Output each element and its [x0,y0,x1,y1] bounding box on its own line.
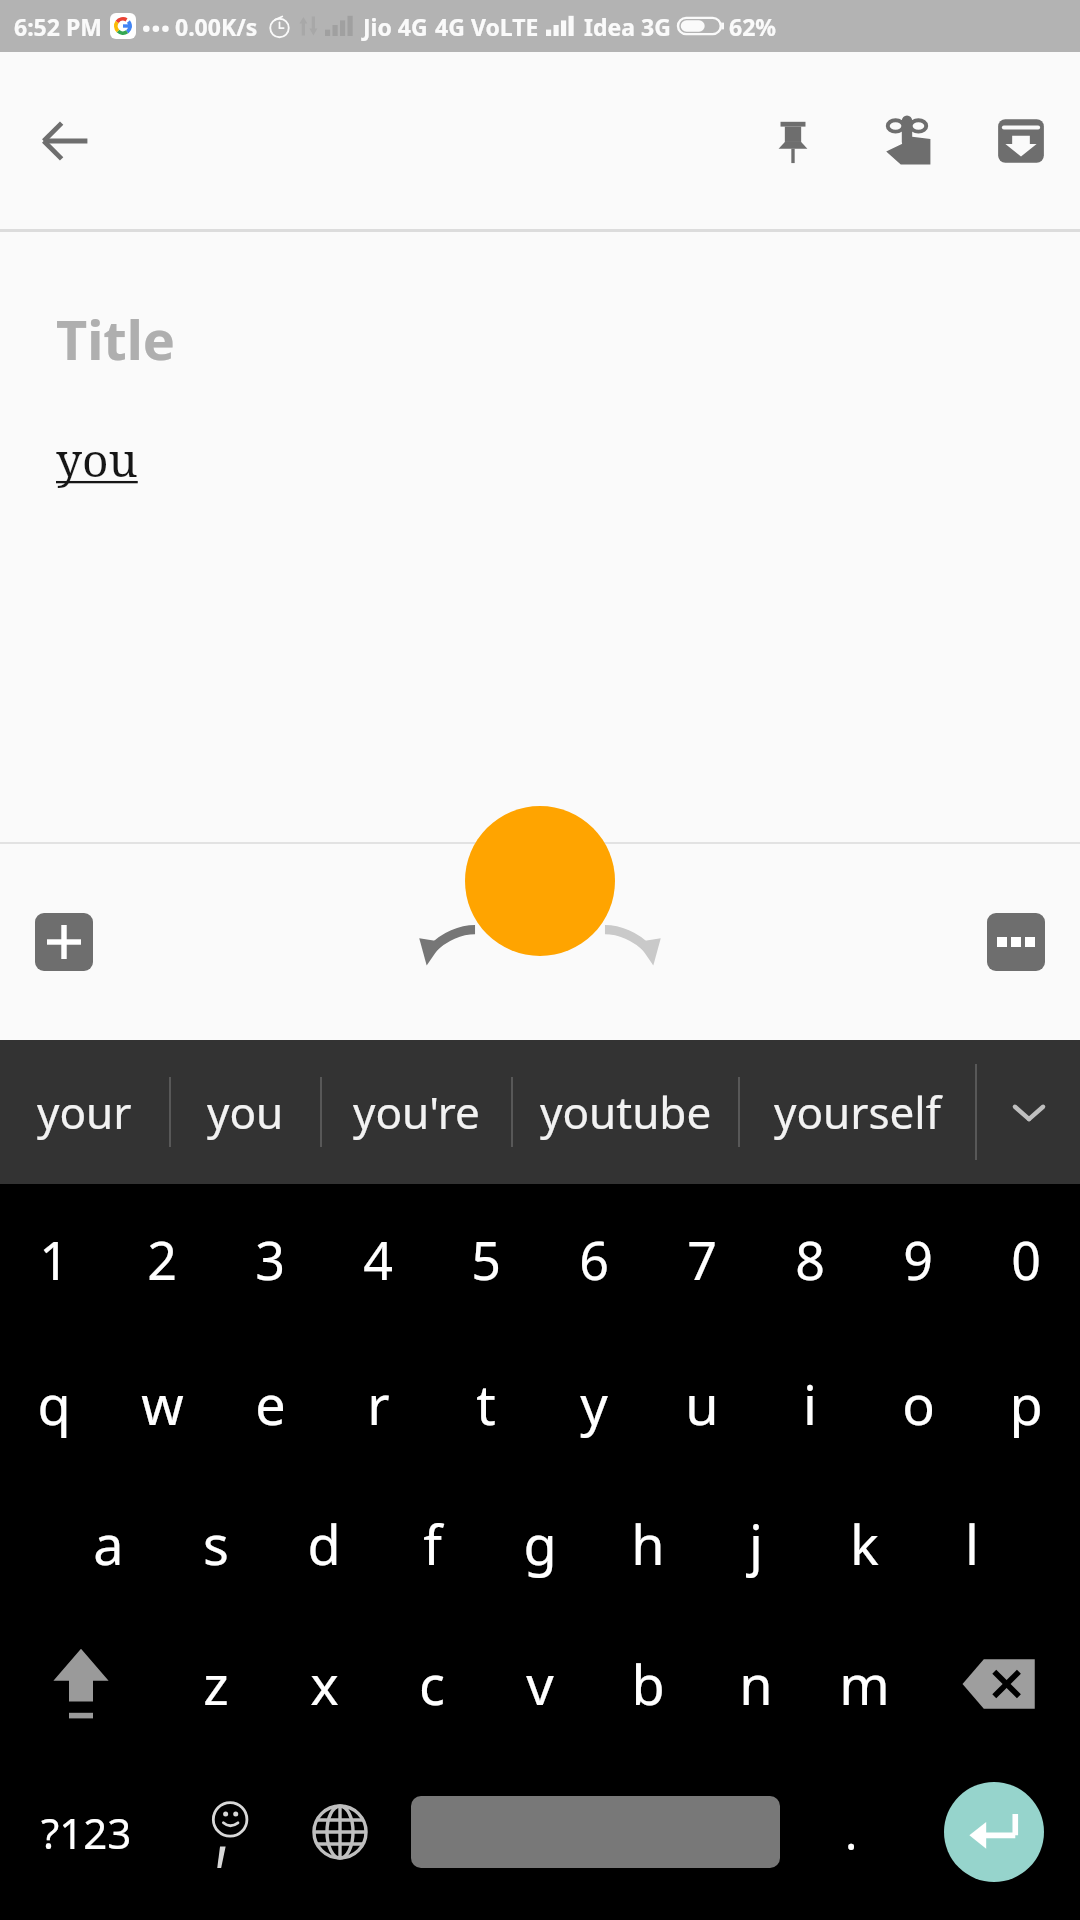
staticText: Idea 3G [584,11,671,42]
staticText: u [685,1367,719,1441]
button[interactable]: Undo [404,897,494,987]
button[interactable]: 1 [0,1184,108,1334]
button[interactable]: a [54,1474,162,1614]
button[interactable]: Title [56,302,176,376]
button[interactable]: r [324,1334,432,1474]
button[interactable]: c [378,1614,486,1754]
button[interactable]: Pin [752,100,834,182]
button[interactable]: Enter [944,1782,1044,1882]
button[interactable]: 8 [756,1184,864,1334]
button[interactable]: m [810,1614,918,1754]
staticText: 5 [471,1224,501,1295]
button[interactable]: youtube [513,1040,738,1184]
button[interactable]: 9 [864,1184,972,1334]
button[interactable]: Backspace [918,1614,1080,1754]
button[interactable]: your [0,1040,169,1184]
button[interactable]: h [594,1474,702,1614]
staticText: z [203,1647,229,1721]
button[interactable]: Back [24,100,106,182]
staticText: m [839,1647,890,1721]
button[interactable]: y [540,1334,648,1474]
staticText: l [965,1507,979,1581]
button[interactable]: q [0,1334,108,1474]
button[interactable]: . [796,1754,907,1910]
button[interactable]: More options [980,906,1052,978]
staticText: 6:52 PM [14,11,102,42]
button[interactable]: x [270,1614,378,1754]
button[interactable]: f [378,1474,486,1614]
button[interactable]: j [702,1474,810,1614]
button[interactable]: 5 [432,1184,540,1334]
staticText: k [850,1507,879,1581]
button[interactable]: n [702,1614,810,1754]
button[interactable]: s [162,1474,270,1614]
button[interactable]: Add [28,906,100,978]
staticText: j [749,1507,763,1581]
button[interactable]: you [56,428,138,491]
staticText: s [203,1507,229,1581]
button[interactable]: Palette [465,806,615,956]
staticText: youtube [540,1082,712,1142]
button[interactable]: yourself [740,1040,975,1184]
staticText: e [255,1367,286,1441]
button[interactable]: e [216,1334,324,1474]
button[interactable]: you're [322,1040,511,1184]
staticText: 3 [255,1224,285,1295]
button[interactable]: k [810,1474,918,1614]
button[interactable]: 7 [648,1184,756,1334]
staticText: 1 [39,1224,69,1295]
staticText: VoLTE [471,11,539,42]
staticText: x [310,1647,339,1721]
staticText: your [37,1082,132,1142]
button[interactable]: z [162,1614,270,1754]
staticText: a [93,1507,124,1581]
staticText: t [476,1367,496,1441]
button[interactable]: Expand suggestions [977,1040,1080,1184]
button[interactable]: w [108,1334,216,1474]
staticText: 4G [435,11,465,42]
staticText: p [1009,1367,1043,1441]
button[interactable]: b [594,1614,702,1754]
button[interactable]: Redo [586,897,676,987]
button[interactable]: you [171,1040,320,1184]
staticText: o [902,1367,935,1441]
staticText: yourself [774,1082,941,1142]
staticText: y [580,1367,608,1441]
staticText: 9 [903,1224,933,1295]
staticText: ?123 [41,1804,132,1861]
staticText: q [37,1367,71,1441]
button[interactable]: 2 [108,1184,216,1334]
button[interactable]: Change language [284,1754,395,1910]
button[interactable]: Emoji and comma [173,1754,284,1910]
staticText: g [523,1507,557,1581]
button[interactable]: p [972,1334,1080,1474]
button[interactable]: Reminder [866,100,948,182]
button[interactable]: 3 [216,1184,324,1334]
button[interactable]: g [486,1474,594,1614]
button[interactable]: t [432,1334,540,1474]
staticText: v [526,1647,554,1721]
button[interactable]: 4 [324,1184,432,1334]
button[interactable]: i [756,1334,864,1474]
button[interactable]: v [486,1614,594,1754]
staticText: 4 [363,1224,393,1295]
button[interactable]: o [864,1334,972,1474]
button[interactable]: Archive [980,100,1062,182]
staticText: h [631,1507,665,1581]
button[interactable]: ?123 [0,1754,173,1910]
staticText: 8 [795,1224,825,1295]
staticText: 2 [147,1224,177,1295]
staticText: you [207,1082,284,1142]
button[interactable]: l [918,1474,1026,1614]
button[interactable]: Space [395,1754,796,1910]
button[interactable]: d [270,1474,378,1614]
staticText: 0 [1011,1224,1041,1295]
button[interactable]: Shift [0,1614,162,1754]
button[interactable]: 6 [540,1184,648,1334]
button[interactable]: u [648,1334,756,1474]
staticText: 6 [579,1224,609,1295]
button[interactable]: 0 [972,1184,1080,1334]
staticText: 0.00K/s [175,11,258,42]
staticText: b [631,1647,665,1721]
staticText: . [845,1801,858,1864]
